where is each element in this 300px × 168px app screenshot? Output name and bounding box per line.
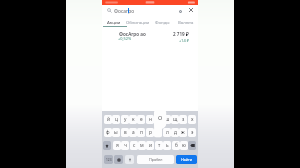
button[interactable]: а (129, 128, 137, 137)
button[interactable]: л (163, 128, 171, 137)
button[interactable]: Dictate (125, 155, 134, 164)
button[interactable]: ч (121, 141, 129, 150)
button[interactable]: х (188, 115, 196, 124)
button[interactable]: Numbers (104, 155, 113, 164)
button[interactable]: Пробел (137, 155, 174, 164)
staticText: с (133, 142, 136, 149)
staticText: х (191, 116, 194, 123)
button[interactable]: н (146, 115, 154, 124)
button[interactable]: Валюта (174, 16, 198, 28)
staticText: 2 719 ₽ (173, 31, 189, 37)
button[interactable]: Фонды (150, 16, 174, 28)
button[interactable]: е (137, 115, 145, 124)
button[interactable] (105, 5, 175, 16)
button[interactable]: р (146, 128, 154, 137)
staticText: м (140, 142, 144, 149)
staticText: в (124, 129, 127, 136)
staticText: ш (165, 116, 170, 123)
button[interactable]: э (188, 128, 196, 137)
staticText: з (182, 116, 185, 123)
button[interactable]: ц (112, 115, 120, 124)
button[interactable]: Shift (103, 141, 111, 150)
button[interactable]: к (129, 115, 137, 124)
staticText: э (191, 129, 194, 136)
staticText: Найти (181, 157, 193, 162)
button[interactable]: щ (171, 115, 179, 124)
button[interactable]: з (179, 115, 187, 124)
staticText: Фонды (155, 19, 170, 25)
button[interactable]: Акции (102, 16, 126, 28)
staticText: ж (181, 129, 185, 136)
staticText: Облигации (126, 19, 150, 25)
staticText: щ (173, 116, 178, 123)
button[interactable]: д (171, 128, 179, 137)
staticText: Фосагро (114, 8, 135, 15)
button[interactable]: с (130, 141, 138, 150)
staticText: и (149, 142, 152, 149)
staticText: я (116, 142, 119, 149)
staticText: л (166, 129, 169, 136)
button[interactable]: ы (112, 128, 120, 137)
staticText: 123 (106, 158, 112, 162)
button[interactable]: й (104, 115, 112, 124)
staticText: е (140, 116, 143, 123)
staticText: й (107, 116, 110, 123)
staticText: О (158, 114, 163, 122)
button[interactable]: ф (104, 128, 112, 137)
button[interactable]: ж (179, 128, 187, 137)
button[interactable]: Clear search (176, 7, 184, 15)
button[interactable]: ФосАгро ао (102, 28, 198, 41)
staticText: ФосАгро ао (119, 31, 146, 37)
staticText: Валюта (178, 19, 194, 25)
button[interactable]: ю (180, 141, 188, 150)
button[interactable]: я (113, 141, 121, 150)
staticText: ь (166, 142, 169, 149)
staticText: т (158, 142, 161, 149)
staticText: д (174, 129, 177, 136)
staticText: +0,52% (118, 36, 132, 41)
staticText: п (140, 129, 143, 136)
staticText: +14 ₽ (179, 38, 189, 43)
staticText: б (175, 142, 178, 149)
button[interactable]: и (146, 141, 154, 150)
staticText: а (132, 129, 135, 136)
button[interactable]: п (137, 128, 145, 137)
staticText: ы (114, 129, 118, 136)
button[interactable]: Облигации (126, 16, 150, 28)
button[interactable]: г (154, 115, 162, 124)
staticText: г (157, 116, 160, 123)
staticText: Акции (107, 19, 121, 25)
button[interactable]: Change keyboard (114, 155, 123, 164)
staticText: ц (115, 116, 118, 123)
staticText: у (124, 116, 127, 123)
button[interactable]: м (138, 141, 146, 150)
staticText: ф (106, 129, 110, 136)
button[interactable]: в (121, 128, 129, 137)
button[interactable]: Найти (176, 155, 197, 164)
button[interactable]: ш (163, 115, 171, 124)
button[interactable]: Backspace (188, 141, 196, 150)
staticText: Пробел (149, 157, 163, 162)
button[interactable]: ь (163, 141, 171, 150)
staticText: н (149, 116, 152, 123)
button[interactable]: у (121, 115, 129, 124)
button[interactable]: Close (187, 6, 195, 14)
staticText: к (132, 116, 135, 123)
staticText: р (149, 129, 152, 136)
button[interactable]: т (155, 141, 163, 150)
staticText: ю (182, 142, 186, 149)
button[interactable]: б (172, 141, 180, 150)
staticText: ч (124, 142, 127, 149)
